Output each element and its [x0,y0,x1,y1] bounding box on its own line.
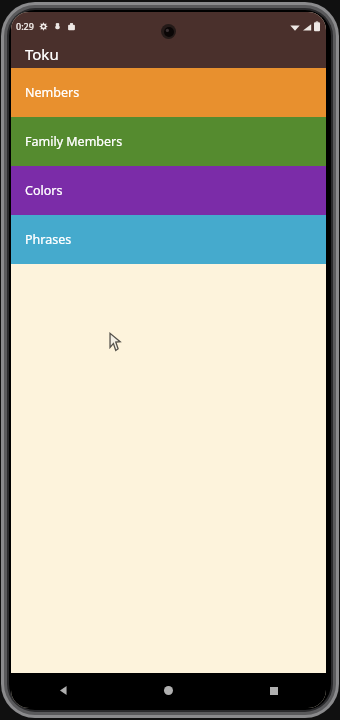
staticText: Toku [25,44,59,64]
staticText: Nembers [25,84,80,101]
button[interactable]: Home [116,673,221,708]
button[interactable]: Back [11,673,116,708]
staticText: Phrases [25,231,72,248]
button[interactable]: Family Members [11,117,326,166]
staticText: 0:29 [16,20,34,32]
button[interactable]: Recent apps [221,673,326,708]
button[interactable]: Nembers [11,68,326,117]
staticText: Colors [25,182,63,199]
button[interactable]: Phrases [11,215,326,264]
staticText: Family Members [25,133,123,150]
button[interactable]: Colors [11,166,326,215]
